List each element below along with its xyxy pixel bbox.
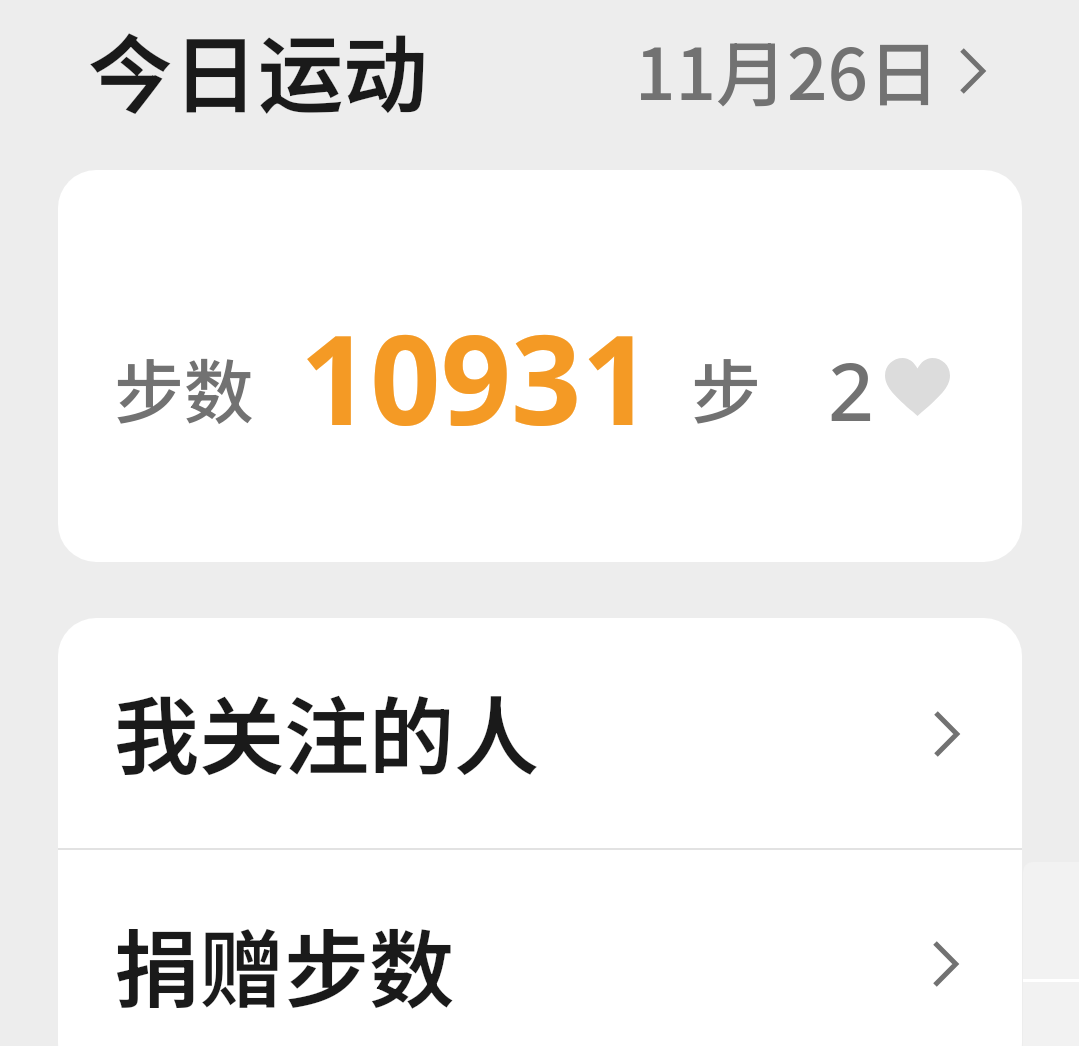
staticText: 10931 [300, 294, 652, 462]
staticText: 11月26日 [635, 18, 939, 121]
staticText: 步数 [114, 337, 254, 438]
staticText: 我关注的人 [114, 669, 540, 792]
button[interactable]: 捐赠步数 [58, 850, 1022, 1046]
staticText: 捐赠步数 [114, 902, 455, 1025]
button[interactable]: 我关注的人 [58, 618, 1022, 848]
button[interactable]: 11月26日 [620, 5, 1010, 137]
staticText: 今日运动 [88, 7, 429, 130]
staticText: 步 [691, 337, 761, 438]
button[interactable]: Like [818, 300, 968, 430]
other: Open [934, 711, 960, 757]
other: Open [933, 941, 959, 987]
staticText: 2 [828, 335, 874, 444]
